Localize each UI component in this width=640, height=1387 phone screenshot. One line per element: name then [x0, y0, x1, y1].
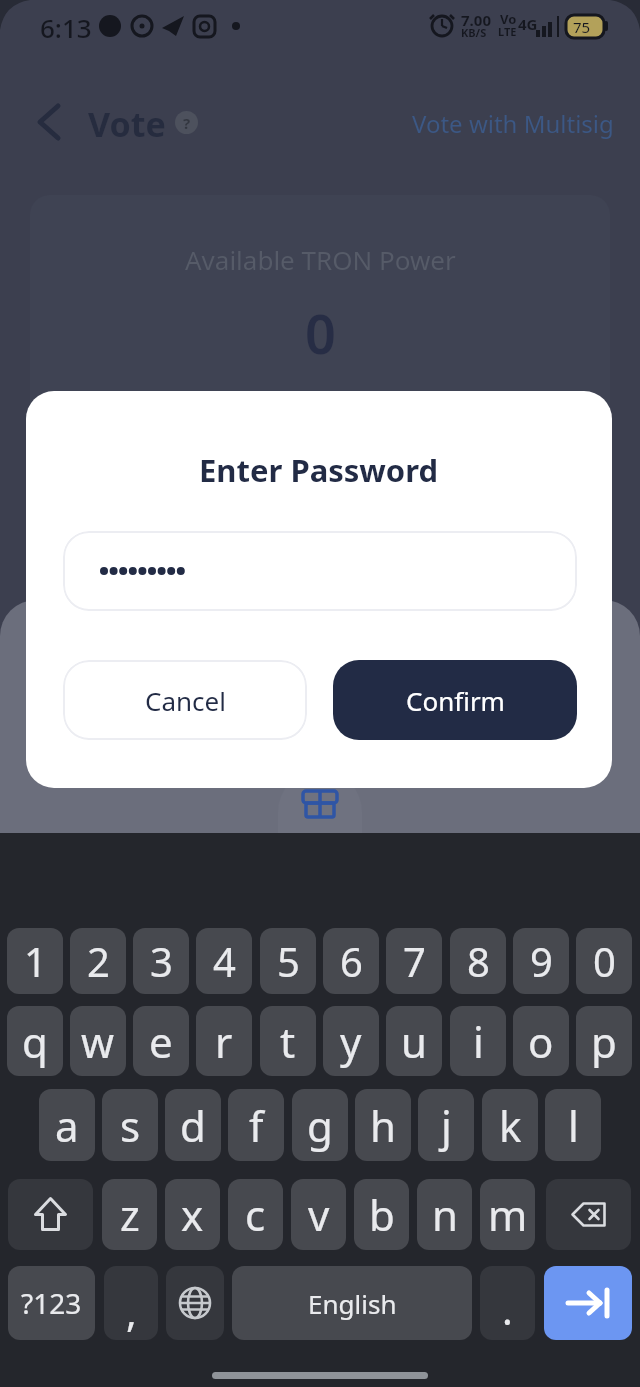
staticText: 2: [87, 934, 110, 988]
button[interactable]: ,: [104, 1266, 158, 1340]
staticText: t: [280, 1013, 296, 1070]
staticText: KB/S: [461, 25, 487, 40]
staticText: s: [120, 1097, 141, 1154]
button[interactable]: 5: [260, 928, 316, 994]
button[interactable]: [8, 1179, 93, 1250]
button[interactable]: e: [133, 1006, 189, 1076]
button[interactable]: m: [480, 1179, 535, 1250]
staticText: b: [369, 1186, 395, 1243]
staticText: n: [432, 1186, 458, 1243]
button[interactable]: .: [480, 1266, 535, 1340]
staticText: Vote: [88, 101, 166, 147]
staticText: 4G: [518, 14, 538, 34]
staticText: 7: [403, 934, 426, 988]
button[interactable]: o: [513, 1006, 569, 1076]
button[interactable]: p: [576, 1006, 632, 1076]
button[interactable]: 0: [576, 928, 632, 994]
staticText: c: [245, 1186, 266, 1243]
staticText: j: [441, 1097, 452, 1154]
button[interactable]: a: [39, 1089, 95, 1161]
staticText: 0: [593, 934, 616, 988]
staticText: English: [308, 1286, 397, 1321]
button[interactable]: 8: [450, 928, 506, 994]
staticText: 6: [340, 934, 363, 988]
button[interactable]: [166, 1266, 224, 1340]
staticText: Cancel: [145, 683, 226, 718]
button[interactable]: n: [417, 1179, 472, 1250]
staticText: ?: [183, 113, 191, 133]
staticText: e: [149, 1013, 173, 1070]
staticText: ?123: [21, 1284, 82, 1322]
button[interactable]: 4: [196, 928, 252, 994]
staticText: 3: [150, 934, 173, 988]
button[interactable]: ?123: [8, 1266, 95, 1340]
button[interactable]: b: [354, 1179, 409, 1250]
staticText: 5: [277, 934, 300, 988]
button[interactable]: 1: [7, 928, 63, 994]
button[interactable]: z: [102, 1179, 157, 1250]
staticText: x: [181, 1186, 204, 1243]
staticText: Vote with Multisig: [412, 107, 614, 140]
button[interactable]: 2: [70, 928, 126, 994]
staticText: 4: [213, 934, 236, 988]
button[interactable]: 6: [323, 928, 379, 994]
staticText: v: [308, 1186, 330, 1243]
staticText: m: [488, 1186, 528, 1243]
staticText: 8: [467, 934, 490, 988]
button[interactable]: 3: [133, 928, 189, 994]
button[interactable]: d: [165, 1089, 221, 1161]
button[interactable]: h: [355, 1089, 411, 1161]
button[interactable]: Vote with Multisig: [330, 104, 614, 142]
staticText: LTE: [498, 24, 517, 39]
button[interactable]: [544, 1266, 632, 1340]
button[interactable]: f: [228, 1089, 284, 1161]
staticText: l: [568, 1097, 579, 1154]
button[interactable]: y: [323, 1006, 379, 1076]
staticText: Confirm: [406, 683, 505, 718]
staticText: ,: [126, 1284, 137, 1338]
button[interactable]: c: [228, 1179, 283, 1250]
staticText: 6:13: [40, 10, 92, 45]
staticText: 75: [573, 17, 591, 37]
staticText: Enter Password: [199, 449, 439, 491]
staticText: d: [180, 1097, 206, 1154]
staticText: u: [401, 1013, 427, 1070]
staticText: f: [249, 1097, 264, 1154]
staticText: .: [502, 1282, 513, 1336]
staticText: y: [340, 1013, 362, 1070]
button[interactable]: r: [196, 1006, 252, 1076]
button[interactable]: v: [291, 1179, 346, 1250]
button[interactable]: ?: [175, 111, 198, 134]
staticText: h: [370, 1097, 396, 1154]
button[interactable]: t: [260, 1006, 316, 1076]
button[interactable]: [63, 531, 577, 611]
button[interactable]: English: [232, 1266, 472, 1340]
staticText: r: [215, 1013, 233, 1070]
button[interactable]: l: [545, 1089, 601, 1161]
staticText: 9: [530, 934, 553, 988]
button[interactable]: u: [386, 1006, 442, 1076]
staticText: o: [528, 1013, 554, 1070]
button[interactable]: [28, 98, 72, 146]
button[interactable]: 9: [513, 928, 569, 994]
button[interactable]: Cancel: [63, 660, 307, 740]
staticText: z: [120, 1186, 140, 1243]
staticText: Available TRON Power: [185, 242, 456, 277]
button[interactable]: k: [482, 1089, 538, 1161]
button[interactable]: 7: [386, 928, 442, 994]
button[interactable]: g: [292, 1089, 348, 1161]
staticText: 7.00: [461, 10, 491, 30]
button[interactable]: Confirm: [333, 660, 577, 740]
button[interactable]: j: [418, 1089, 474, 1161]
staticText: g: [307, 1097, 333, 1154]
button[interactable]: q: [7, 1006, 63, 1076]
staticText: Vo: [500, 10, 517, 28]
button[interactable]: s: [102, 1089, 158, 1161]
button[interactable]: [546, 1179, 631, 1250]
button[interactable]: i: [450, 1006, 506, 1076]
button[interactable]: w: [70, 1006, 126, 1076]
staticText: i: [473, 1013, 484, 1070]
button[interactable]: x: [165, 1179, 220, 1250]
staticText: p: [591, 1013, 617, 1070]
staticText: 0: [305, 296, 336, 370]
